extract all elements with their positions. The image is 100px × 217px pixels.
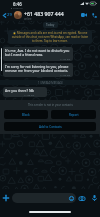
staticText: I'm sorry for not listening to you, plea…: [5, 64, 71, 73]
button[interactable]: Profile photo: [14, 11, 22, 19]
button[interactable]: Back: [0, 12, 13, 18]
button[interactable]: 🔒 Messages and calls are end-to-end encr…: [8, 30, 92, 44]
button[interactable]: Voice message: [88, 191, 100, 205]
staticText: 11:58 am: [24, 93, 35, 96]
button[interactable]: Video call: [78, 9, 89, 21]
staticText: Snapchat: [13, 7, 23, 10]
staticText: 29: [7, 12, 12, 18]
staticText: This sender is not in your contacts: [28, 103, 73, 107]
button[interactable]: It's me, Ava. I do not want to disturb y…: [3, 47, 73, 61]
staticText: 1 UNREAD MESSAGE: [38, 81, 63, 85]
button[interactable]: Attach: [0, 191, 12, 205]
staticText: 11:54 am: [60, 57, 71, 60]
staticText: It's me, Ava. I do not want to disturb y…: [5, 48, 71, 57]
button[interactable]: I'm sorry for not listening to you, plea…: [3, 63, 73, 77]
button[interactable]: Emoji: [12, 193, 76, 203]
staticText: 11:56 am: [60, 73, 71, 76]
button[interactable]: Camera: [76, 191, 88, 205]
staticText: online: [24, 17, 32, 21]
staticText: 6:46: [13, 1, 22, 7]
staticText: +61 483 907 444: [24, 10, 64, 17]
staticText: Are you there? Nik: [5, 88, 35, 93]
button[interactable]: Today: [43, 22, 58, 28]
button[interactable]: Add to Contacts: [4, 122, 96, 131]
staticText: 🔒 Messages and calls are end-to-end encr…: [11, 31, 89, 43]
staticText: Add to Contacts: [39, 125, 62, 129]
staticText: Block: [22, 113, 30, 117]
button[interactable]: Are you there? Nik: [3, 87, 47, 97]
button[interactable]: Emoji: [68, 195, 75, 202]
staticText: Today: [46, 23, 55, 27]
button[interactable]: Report: [51, 110, 96, 119]
button[interactable]: Block: [4, 110, 48, 119]
staticText: Report: [69, 113, 79, 117]
button[interactable]: Voice call: [89, 9, 100, 21]
